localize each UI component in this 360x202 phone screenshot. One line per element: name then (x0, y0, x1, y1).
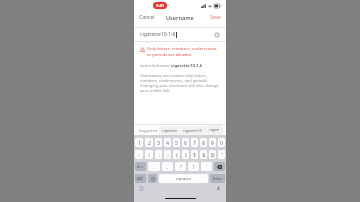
staticText: Username (166, 14, 194, 21)
staticText: 5 (175, 139, 178, 146)
button[interactable]: 7 (191, 138, 198, 147)
button[interactable]: $ (191, 150, 198, 159)
staticText: @ (210, 152, 215, 158)
staticText: $ (193, 152, 196, 158)
staticText: Suggested (139, 128, 157, 133)
staticText: ) (185, 152, 187, 158)
button[interactable]: . (148, 162, 160, 171)
staticText: , (167, 164, 169, 170)
staticText: / (148, 152, 150, 158)
staticText: Intro (213, 176, 222, 181)
staticText: Save (210, 14, 221, 21)
button[interactable]: Intro (210, 174, 225, 183)
staticText: 9:41 (156, 3, 164, 8)
button[interactable]: Cancel (134, 12, 160, 23)
button[interactable]: 0 (218, 138, 225, 147)
button[interactable]: ) (182, 150, 189, 159)
staticText: ? (180, 164, 182, 170)
button[interactable]: / (145, 150, 153, 159)
button[interactable]: : (155, 150, 162, 159)
button[interactable]: @ (209, 150, 216, 159)
button[interactable]: 3 (155, 138, 162, 147)
button[interactable]: ! (188, 162, 199, 171)
staticText: 9 (211, 139, 214, 146)
staticText: cigarette10-1-6 (171, 63, 203, 69)
button[interactable]: Emoji (148, 174, 157, 183)
button[interactable]: 4 (164, 138, 171, 147)
button[interactable]: ; (164, 150, 171, 159)
staticText: espacio (176, 176, 191, 182)
button[interactable]: 1 (135, 138, 143, 147)
staticText: 2 (148, 139, 151, 146)
staticText: : (158, 152, 160, 158)
staticText: 3 (157, 139, 160, 146)
button[interactable]: 8 (200, 138, 207, 147)
staticText: some.link.com/ (140, 63, 171, 69)
staticText: ! (193, 164, 195, 170)
button[interactable]: Suggested (137, 127, 159, 134)
staticText: Cancel (139, 14, 155, 21)
staticText: ' (206, 164, 208, 170)
button[interactable]: #+= (135, 162, 146, 171)
staticText: . (153, 164, 155, 170)
staticText: cigarette15 (183, 128, 203, 133)
button[interactable]: 9 (209, 138, 216, 147)
staticText: #+= (137, 164, 144, 169)
button[interactable]: , (162, 162, 173, 171)
staticText: cigarette90 (209, 127, 220, 133)
button[interactable]: - (135, 150, 143, 159)
staticText: " (221, 152, 223, 158)
button[interactable]: cigarette10-1-6 (134, 28, 226, 41)
staticText: ; (167, 152, 169, 158)
button[interactable]: ? (175, 162, 186, 171)
staticText: Only letters, numbers, underscores, or p… (147, 46, 218, 58)
staticText: - (138, 152, 140, 158)
button[interactable]: ABC (135, 174, 146, 183)
button[interactable]: cigarette (159, 126, 180, 135)
staticText: & (202, 152, 206, 158)
button[interactable]: some.link.com/ (134, 58, 226, 69)
button[interactable]: " (218, 150, 225, 159)
button[interactable]: ' (201, 162, 212, 171)
button[interactable]: 6 (182, 138, 189, 147)
button[interactable]: Keyboard settings (139, 186, 144, 191)
staticText: 4 (166, 139, 169, 146)
staticText: 6 (184, 139, 187, 146)
button[interactable]: 2 (145, 138, 153, 147)
button[interactable]: Save (205, 12, 226, 23)
button[interactable]: Backspace (214, 162, 225, 171)
button[interactable]: Dictation (216, 186, 221, 191)
button[interactable]: espacio (159, 174, 208, 183)
button[interactable]: & (200, 150, 207, 159)
staticText: ABC (137, 176, 144, 181)
button[interactable]: Clear text (214, 32, 220, 38)
staticText: 0 (220, 139, 223, 146)
staticText: ( (176, 152, 178, 158)
button[interactable]: cigarette15 (180, 126, 206, 135)
staticText: cigarette (162, 128, 177, 133)
staticText: cigarette10-1-6 (140, 31, 176, 38)
button[interactable]: 5 (173, 138, 180, 147)
staticText: 1 (138, 139, 141, 146)
staticText: 7 (193, 139, 196, 146)
staticText: Usernames can contain only letters, numb… (140, 73, 219, 93)
staticText: 8 (202, 139, 205, 146)
button[interactable]: ( (173, 150, 180, 159)
button[interactable]: cigarette90 (206, 125, 223, 135)
